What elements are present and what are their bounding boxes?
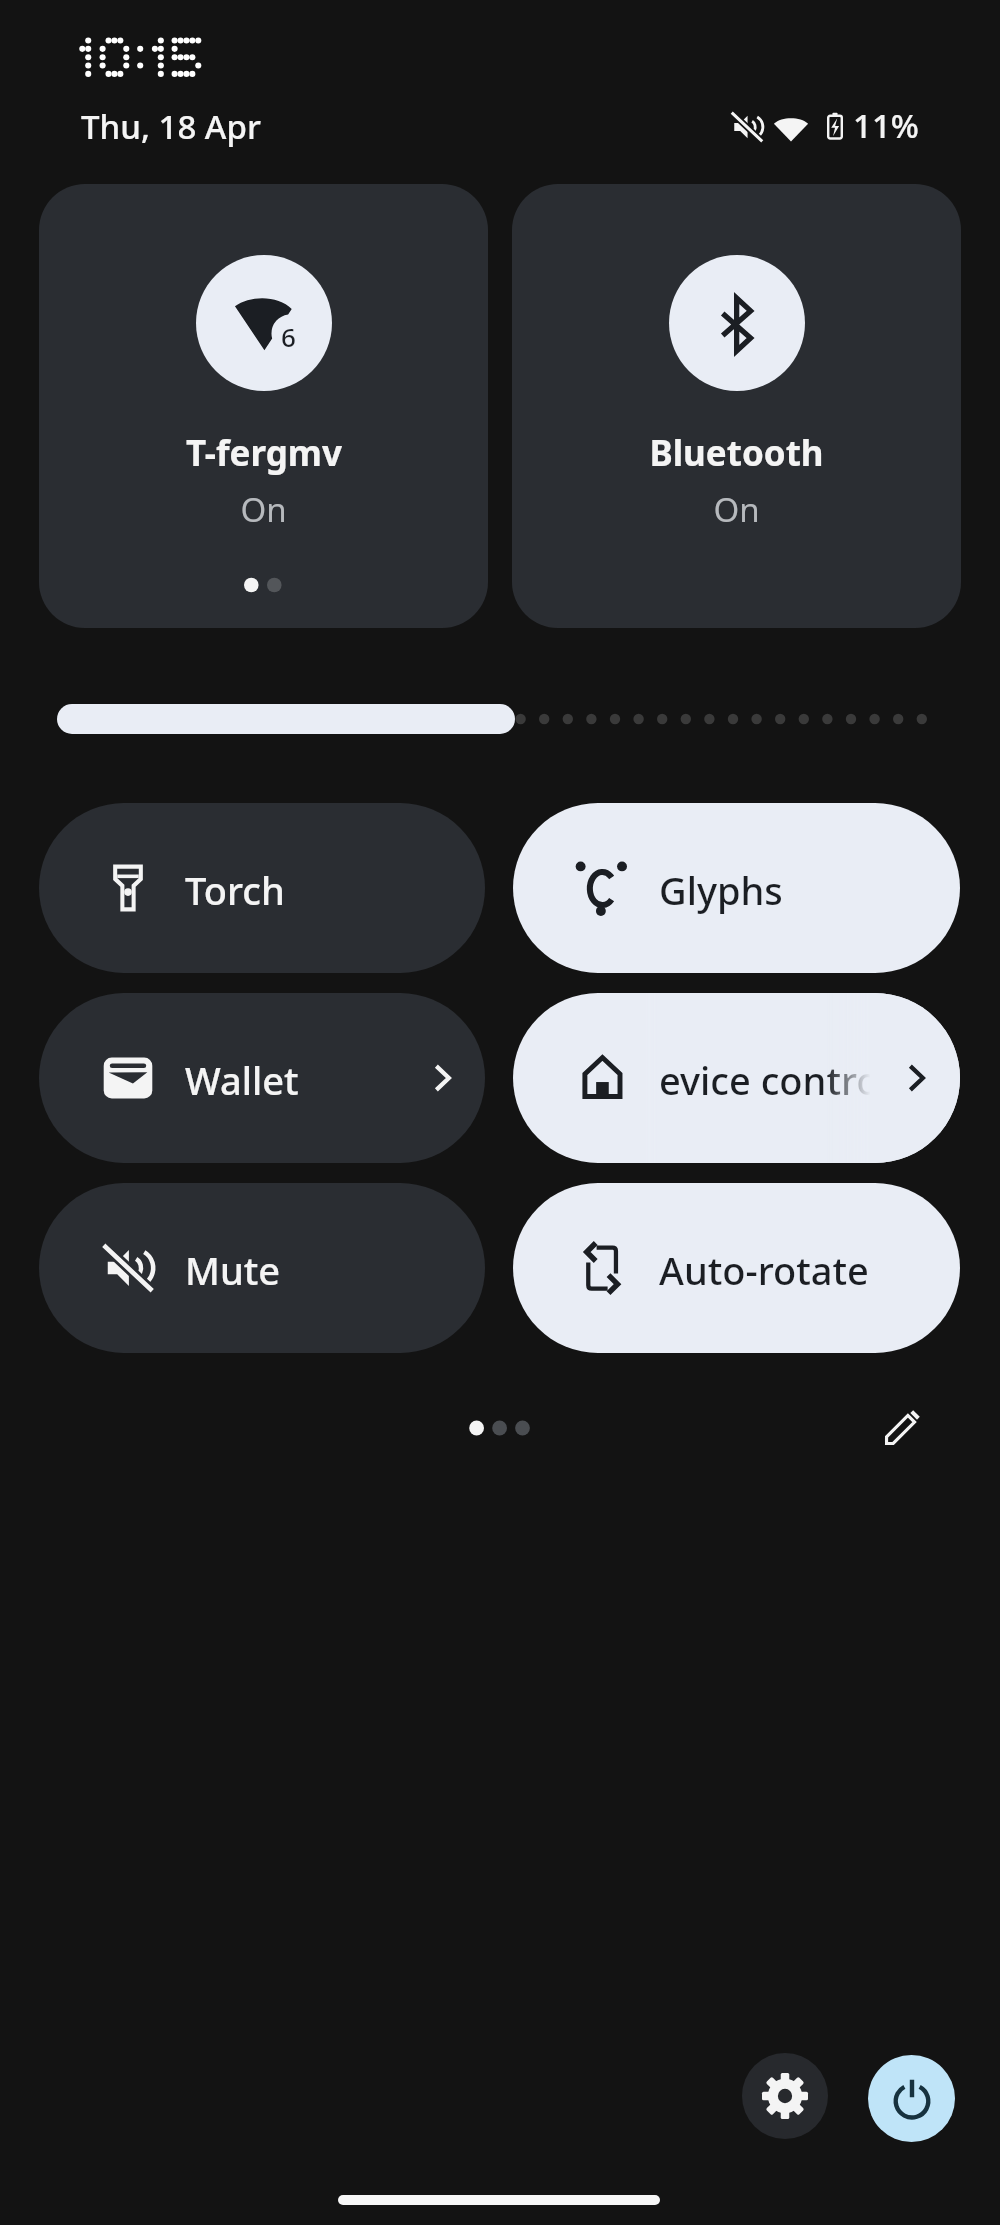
staticText: On <box>240 487 287 532</box>
staticText: 11% <box>853 103 919 148</box>
staticText: 6 <box>281 319 296 354</box>
staticText: Auto-rotate <box>659 1244 869 1296</box>
staticText: Wallet <box>185 1054 299 1106</box>
staticText: T-fergmv <box>186 429 342 477</box>
staticText: evice contro <box>659 1054 880 1106</box>
button[interactable]: Edit tiles <box>871 1395 935 1459</box>
button[interactable]: Bluetooth <box>512 184 961 628</box>
staticText: Mute <box>185 1244 281 1296</box>
button[interactable]: Torch <box>39 803 485 973</box>
button[interactable]: Wallet <box>39 993 485 1163</box>
staticText: Bluetooth <box>649 429 824 477</box>
staticText: Thu, 18 Apr <box>81 104 261 149</box>
staticText: On <box>713 487 760 532</box>
staticText: Torch <box>185 864 285 916</box>
button[interactable]: 6 <box>39 184 488 628</box>
staticText: Glyphs <box>659 864 783 916</box>
button[interactable]: Mute <box>39 1183 485 1353</box>
button[interactable]: Brightness <box>39 690 961 748</box>
button[interactable]: Glyphs <box>513 803 960 973</box>
button[interactable]: evice contro <box>513 993 960 1163</box>
button[interactable]: Settings <box>742 2053 828 2139</box>
button[interactable]: Power <box>868 2055 955 2142</box>
button[interactable]: Auto-rotate <box>513 1183 960 1353</box>
